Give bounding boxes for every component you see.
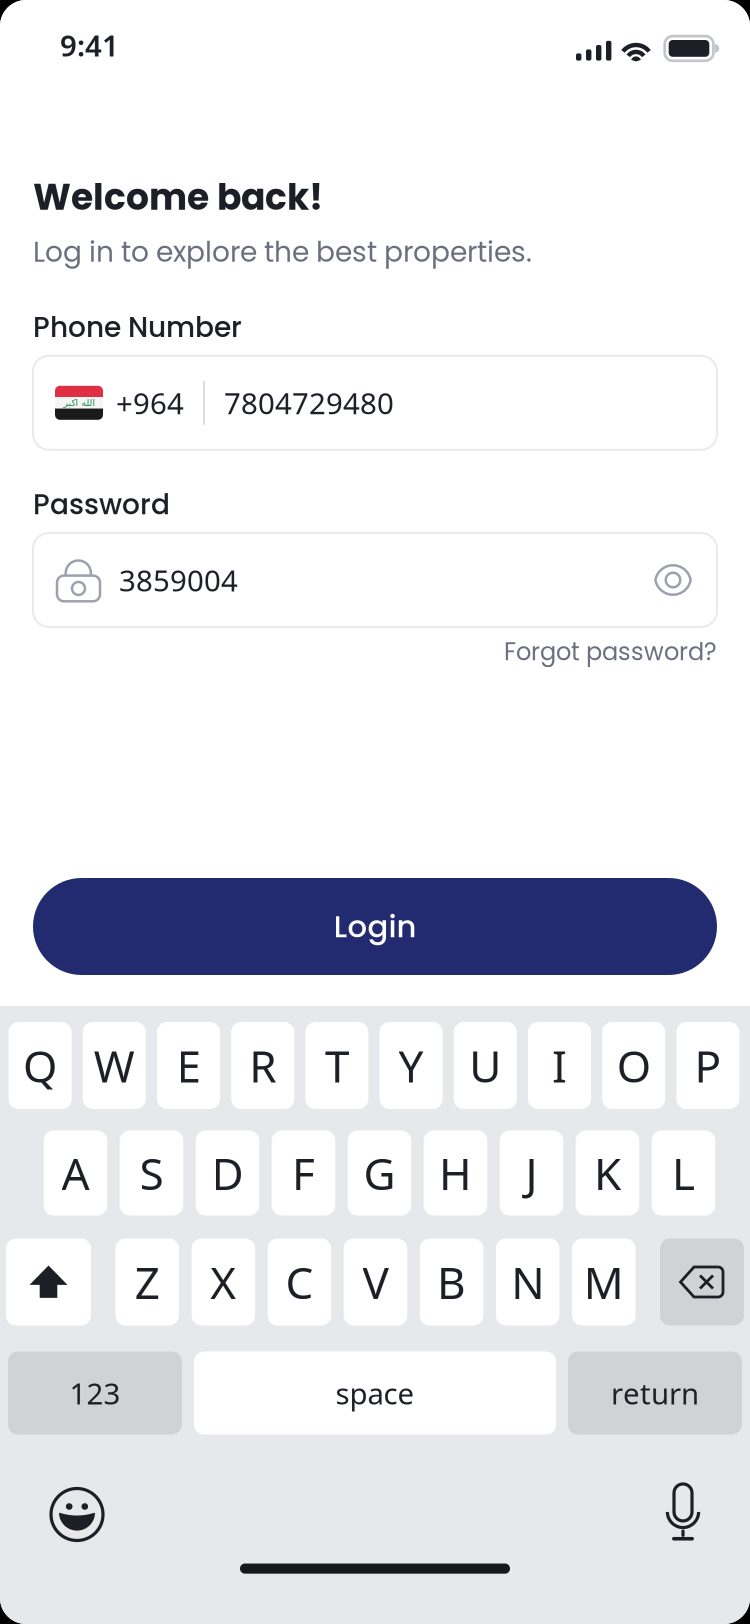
button[interactable]	[660, 1238, 744, 1325]
button[interactable]: K	[576, 1130, 639, 1215]
staticText: E	[176, 1036, 200, 1095]
button[interactable]: V	[344, 1238, 407, 1325]
button[interactable]: E	[157, 1022, 220, 1109]
button[interactable]: return	[568, 1351, 742, 1434]
staticText: Log in to explore the best properties.	[33, 232, 532, 272]
staticText: Z	[135, 1253, 160, 1311]
button[interactable]: O	[602, 1022, 665, 1109]
staticText: F	[292, 1144, 315, 1202]
staticText: space	[335, 1373, 414, 1412]
button[interactable]: I	[528, 1022, 591, 1109]
staticText: الله اكبر	[63, 397, 95, 408]
button[interactable]: Login	[0, 878, 750, 975]
staticText: D	[211, 1144, 243, 1202]
staticText: 9:41	[60, 25, 119, 64]
button[interactable]: S	[120, 1130, 183, 1215]
staticText: G	[363, 1144, 395, 1202]
staticText: V	[362, 1253, 388, 1311]
button[interactable]: 123	[8, 1351, 182, 1434]
button[interactable]: J	[500, 1130, 563, 1215]
staticText: +964	[116, 383, 184, 422]
staticText: return	[611, 1373, 699, 1412]
staticText: Y	[399, 1036, 424, 1095]
staticText: H	[439, 1144, 472, 1202]
button[interactable]: Z	[115, 1238, 179, 1325]
button[interactable]: X	[191, 1238, 255, 1325]
staticText: U	[469, 1036, 501, 1095]
staticText: P	[694, 1036, 721, 1095]
staticText: A	[61, 1144, 89, 1202]
button[interactable]: L	[652, 1130, 715, 1215]
staticText: R	[249, 1036, 276, 1095]
staticText: Phone Number	[33, 308, 242, 347]
staticText: Login	[333, 905, 416, 948]
button[interactable]: Dictate	[666, 1488, 700, 1540]
staticText: Password	[33, 485, 170, 524]
button[interactable]: Show password	[655, 565, 691, 595]
staticText: W	[94, 1036, 135, 1095]
staticText: N	[511, 1253, 544, 1311]
button[interactable]: F	[272, 1130, 335, 1215]
staticText: Welcome back!	[33, 172, 323, 222]
staticText: T	[325, 1036, 349, 1095]
button[interactable]: Forgot password?	[504, 635, 717, 669]
staticText: 123	[69, 1373, 120, 1412]
button[interactable]: D	[196, 1130, 259, 1215]
staticText: B	[437, 1253, 466, 1311]
button[interactable]: space	[194, 1351, 556, 1434]
staticText: 3859004	[119, 560, 238, 599]
staticText: 7804729480	[224, 383, 394, 422]
button[interactable]: Emoji keyboard	[50, 1487, 104, 1541]
staticText: S	[139, 1144, 163, 1202]
button[interactable]: A	[44, 1130, 107, 1215]
button[interactable]: Y	[380, 1022, 443, 1109]
staticText: M	[584, 1253, 624, 1311]
button[interactable]: H	[424, 1130, 487, 1215]
button[interactable]: G	[348, 1130, 411, 1215]
button[interactable]: W	[83, 1022, 146, 1109]
staticText: X	[210, 1253, 236, 1311]
button[interactable]: R	[231, 1022, 294, 1109]
staticText: Q	[23, 1036, 57, 1095]
button[interactable]: P	[676, 1022, 739, 1109]
staticText: K	[594, 1144, 621, 1202]
button[interactable]	[6, 1238, 91, 1325]
button[interactable]: B	[420, 1238, 483, 1325]
staticText: L	[672, 1144, 695, 1202]
button[interactable]: C	[268, 1238, 331, 1325]
staticText: I	[552, 1036, 567, 1095]
button[interactable]: T	[305, 1022, 368, 1109]
button[interactable]: M	[572, 1238, 635, 1325]
staticText: O	[617, 1036, 651, 1095]
button[interactable]: N	[496, 1238, 559, 1325]
staticText: J	[525, 1144, 537, 1202]
staticText: Forgot password?	[504, 635, 717, 669]
staticText: C	[285, 1253, 313, 1311]
button[interactable]: الله اكبر	[0, 356, 750, 450]
button[interactable]: Q	[9, 1022, 72, 1109]
button[interactable]: U	[454, 1022, 517, 1109]
